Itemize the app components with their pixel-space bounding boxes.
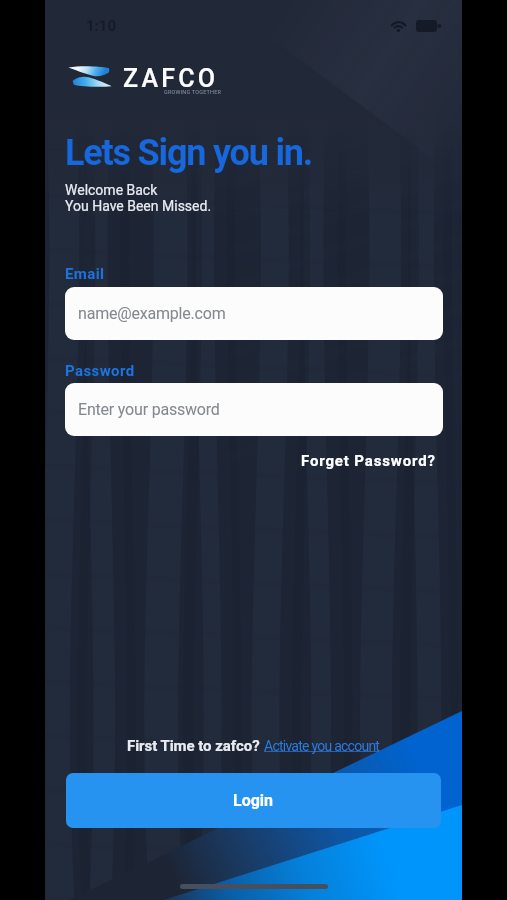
button[interactable]: Activate you account <box>264 738 380 754</box>
staticText: Password <box>65 362 135 380</box>
staticText: Enter your password <box>78 400 220 419</box>
staticText: ZAFCO <box>123 64 219 93</box>
button[interactable]: Forget Password? <box>299 448 438 474</box>
staticText: Activate you account <box>264 738 380 754</box>
button[interactable]: Login <box>66 773 441 828</box>
staticText: Welcome Back <box>65 182 158 198</box>
staticText: First Time to zafco? <box>127 737 264 755</box>
staticText: Forget Password? <box>301 452 436 470</box>
button[interactable]: Enter your password <box>65 383 443 436</box>
staticText: You Have Been Missed. <box>65 198 212 214</box>
button[interactable]: name@example.com <box>65 287 443 340</box>
staticText: name@example.com <box>78 304 226 323</box>
staticText: 1:10 <box>86 17 117 35</box>
staticText: GROWING TOGETHER <box>164 89 222 95</box>
staticText: Lets Sign you in. <box>65 132 313 174</box>
staticText: Login <box>233 791 274 810</box>
staticText: Email <box>65 265 105 283</box>
